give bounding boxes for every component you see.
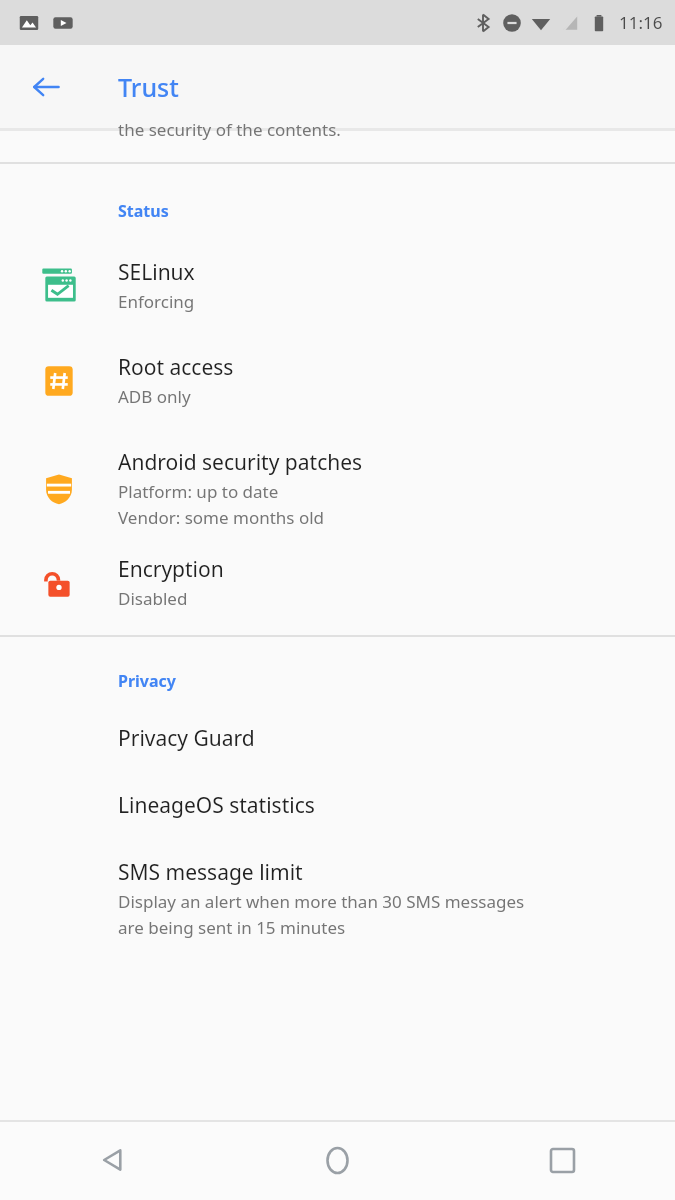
button[interactable]: Privacy Guard bbox=[0, 724, 675, 753]
staticText: Encryption bbox=[118, 555, 224, 584]
staticText: LineageOS statistics bbox=[118, 791, 315, 820]
staticText: Display an alert when more than 30 SMS m… bbox=[118, 890, 525, 939]
staticText: 11:16 bbox=[619, 11, 663, 34]
button[interactable]: SMS message limit bbox=[0, 858, 675, 939]
staticText: Privacy bbox=[118, 670, 176, 692]
staticText: ADB only bbox=[118, 385, 191, 408]
staticText: Platform: up to date Vendor: some months… bbox=[118, 480, 325, 529]
staticText: Privacy Guard bbox=[118, 724, 255, 753]
staticText: Android security patches bbox=[118, 448, 363, 477]
button[interactable]: LineageOS statistics bbox=[0, 791, 675, 820]
button[interactable]: Home bbox=[225, 1120, 450, 1200]
button[interactable]: Back bbox=[0, 1120, 225, 1200]
button[interactable]: Encryption bbox=[0, 553, 675, 612]
button[interactable]: Android security patches bbox=[0, 446, 675, 531]
staticText: Status bbox=[118, 200, 169, 222]
staticText: Trust bbox=[118, 70, 179, 104]
button[interactable]: Recents bbox=[450, 1120, 675, 1200]
staticText: Enforcing bbox=[118, 290, 195, 313]
staticText: Root access bbox=[118, 353, 234, 382]
button[interactable]: Root access bbox=[0, 351, 675, 410]
button[interactable]: SELinux bbox=[0, 256, 675, 315]
staticText: SELinux bbox=[118, 258, 195, 287]
staticText: Disabled bbox=[118, 587, 188, 610]
staticText: the security of the contents. bbox=[118, 118, 341, 141]
staticText: SMS message limit bbox=[118, 858, 303, 887]
button[interactable]: Back bbox=[22, 63, 70, 111]
